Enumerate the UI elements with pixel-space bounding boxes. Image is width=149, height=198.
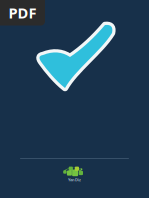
button[interactable]: PDF bbox=[0, 0, 45, 25]
staticText: PDF bbox=[8, 3, 36, 22]
staticText: YanDiz bbox=[68, 177, 81, 182]
